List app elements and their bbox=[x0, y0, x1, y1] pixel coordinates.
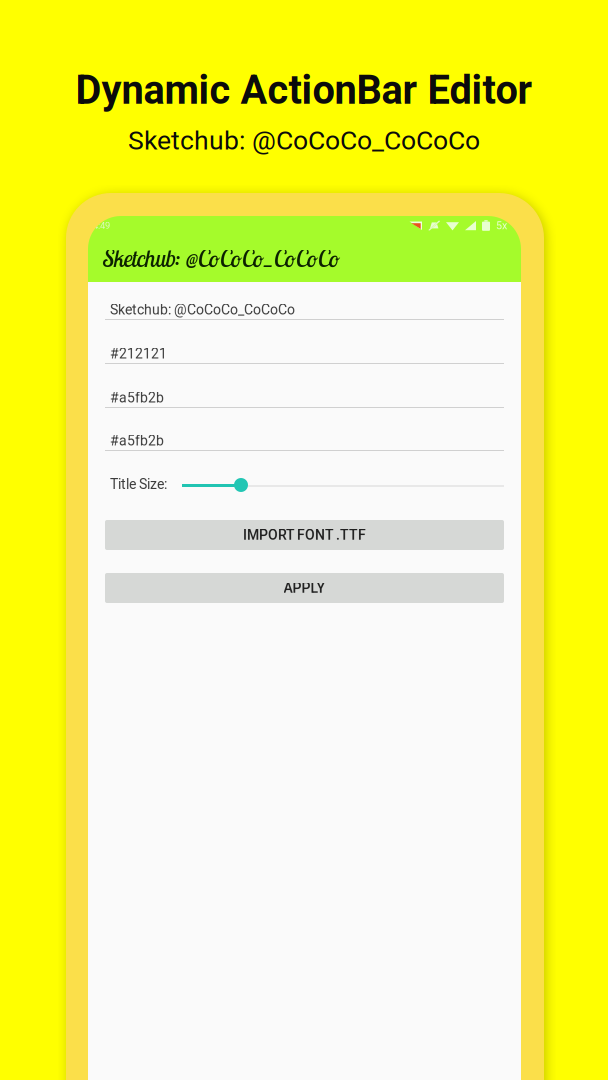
button[interactable]: Sketchub: @CoCoCo_CoCoCo bbox=[105, 282, 504, 320]
staticText: #212121 bbox=[110, 346, 167, 362]
staticText: Title Size: bbox=[110, 476, 167, 492]
staticText: Sketchub: @CoCoCo_CoCoCo bbox=[128, 125, 480, 156]
button[interactable]: IMPORT FONT .TTF bbox=[105, 520, 504, 550]
staticText: #a5fb2b bbox=[110, 433, 164, 449]
staticText: IMPORT FONT .TTF bbox=[243, 527, 366, 543]
staticText: APPLY bbox=[283, 580, 325, 596]
button[interactable]: APPLY bbox=[105, 573, 504, 603]
staticText: Sketchub: @CoCoCo_CoCoCo bbox=[103, 244, 340, 273]
staticText: 4:49 bbox=[93, 220, 110, 231]
staticText: Sketchub: @CoCoCo_CoCoCo bbox=[110, 302, 295, 318]
staticText: #a5fb2b bbox=[110, 390, 164, 406]
staticText: 5x bbox=[496, 219, 507, 232]
button[interactable]: #a5fb2b bbox=[105, 408, 504, 451]
staticText: Dynamic ActionBar Editor bbox=[75, 67, 532, 114]
button[interactable]: #212121 bbox=[105, 320, 504, 364]
button[interactable]: #a5fb2b bbox=[105, 364, 504, 408]
